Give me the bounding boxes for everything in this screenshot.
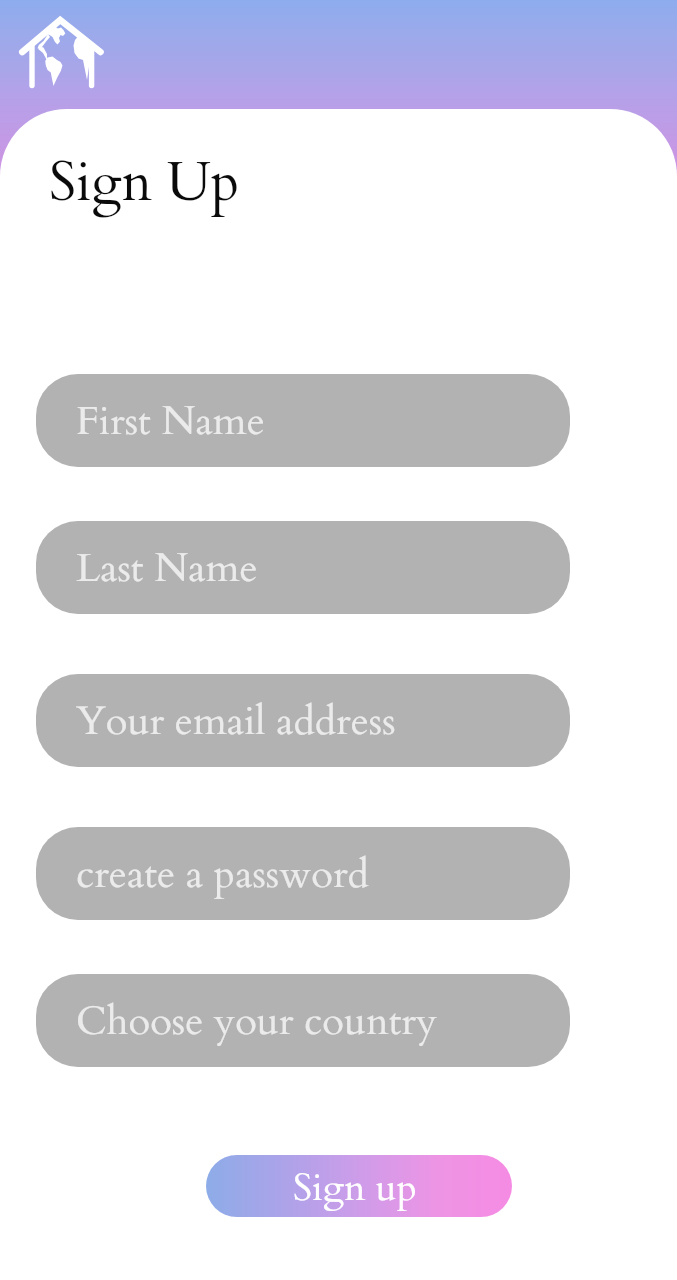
button[interactable]: Your email address bbox=[36, 674, 570, 767]
staticText: Choose your country bbox=[76, 994, 438, 1048]
staticText: Sign up bbox=[293, 1162, 417, 1213]
button[interactable]: create a password bbox=[36, 827, 570, 920]
staticText: Your email address bbox=[76, 694, 396, 748]
button[interactable]: Choose your country bbox=[36, 974, 570, 1067]
staticText: Sign Up bbox=[49, 147, 240, 220]
button[interactable]: First Name bbox=[36, 374, 570, 467]
staticText: create a password bbox=[76, 847, 369, 901]
button[interactable]: Last Name bbox=[36, 521, 570, 614]
other: Home Globe logo bbox=[16, 14, 104, 94]
staticText: Last Name bbox=[76, 541, 258, 595]
button[interactable]: Sign up bbox=[206, 1155, 512, 1217]
staticText: First Name bbox=[76, 394, 265, 448]
